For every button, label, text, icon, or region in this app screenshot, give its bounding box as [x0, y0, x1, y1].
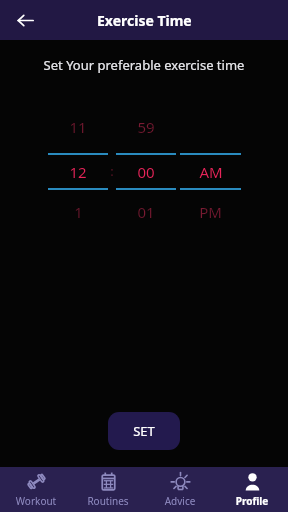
staticText: 00 — [137, 162, 155, 182]
staticText: SET — [133, 422, 155, 440]
staticText: 11 — [69, 117, 87, 137]
button[interactable]: AM — [180, 155, 241, 188]
staticText: 12 — [69, 162, 87, 182]
button[interactable]: Routines — [72, 467, 144, 512]
staticText: Workout — [0, 494, 72, 508]
staticText: PM — [199, 202, 222, 222]
button[interactable]: Workout — [0, 467, 72, 512]
staticText: : — [110, 162, 114, 180]
staticText: Advice — [144, 494, 216, 508]
button[interactable]: Back — [8, 3, 42, 37]
staticText: 01 — [137, 202, 155, 222]
button[interactable]: 00 — [116, 155, 176, 188]
button[interactable]: 11 — [48, 101, 108, 153]
button[interactable]: 59 — [116, 101, 176, 153]
button[interactable]: PM — [180, 190, 241, 234]
button[interactable]: SET — [108, 412, 180, 450]
button[interactable]: Advice — [144, 467, 216, 512]
button[interactable]: Profile — [216, 467, 288, 512]
staticText: Routines — [72, 494, 144, 508]
button[interactable]: 12 — [48, 155, 108, 188]
staticText: Set Your preferable exercise time — [0, 56, 288, 74]
staticText: 59 — [137, 117, 155, 137]
button[interactable]: 01 — [116, 190, 176, 234]
button[interactable]: 1 — [48, 190, 108, 234]
staticText: 1 — [74, 202, 83, 222]
staticText: AM — [199, 162, 223, 182]
staticText: Profile — [216, 494, 288, 508]
staticText: Exercise Time — [97, 11, 192, 30]
